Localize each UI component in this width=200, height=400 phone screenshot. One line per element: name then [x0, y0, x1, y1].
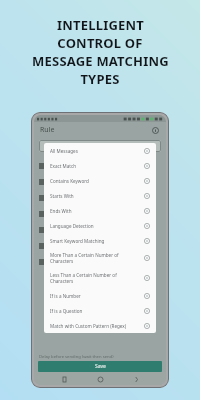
staticText: Language Detection	[50, 223, 144, 229]
staticText: Contains Keyword	[50, 178, 144, 184]
staticText: Starts With	[50, 193, 144, 199]
button[interactable]: Starts With	[44, 188, 156, 203]
staticText: Match with Custom Pattern (Regex)	[50, 323, 144, 329]
staticText: All Messages	[50, 148, 144, 154]
button[interactable]: If is a Number	[44, 288, 156, 303]
staticText: Rule	[40, 125, 55, 135]
button[interactable]: More Than a Certain Number of Characters	[44, 248, 156, 268]
button[interactable]: All Messages	[44, 143, 156, 158]
button[interactable]: Language Detection	[44, 218, 156, 233]
staticText: CONTROL OF	[57, 34, 143, 52]
button[interactable]: Contains Keyword	[44, 173, 156, 188]
staticText: TYPES	[80, 70, 120, 88]
staticText: Smart Keyword Matching	[50, 238, 144, 244]
button[interactable]: Recents	[58, 373, 70, 385]
staticText: Save	[95, 363, 106, 370]
staticText: MESSAGE MATCHING	[32, 52, 169, 70]
button[interactable]: If is a Question	[44, 303, 156, 318]
button[interactable]: Smart Keyword Matching	[44, 233, 156, 248]
button[interactable]: Ends With	[44, 203, 156, 218]
button[interactable]: Home	[94, 373, 106, 385]
staticText: If is a Question	[50, 308, 144, 314]
button[interactable]: Less Than a Certain Number of Characters	[44, 268, 156, 288]
staticText: Less Than a Certain Number of Characters	[50, 272, 144, 284]
staticText: Delay before sending (wait then send)	[39, 354, 114, 360]
staticText: Ends With	[50, 208, 144, 214]
staticText: Exact Match	[50, 163, 144, 169]
button[interactable]: Save	[38, 361, 162, 372]
button[interactable]: Match with Custom Pattern (Regex)	[44, 318, 156, 333]
button[interactable]: Back	[130, 373, 142, 385]
button[interactable]: Exact Match	[44, 158, 156, 173]
staticText: If is a Number	[50, 293, 144, 299]
staticText: More Than a Certain Number of Characters	[50, 252, 144, 264]
button[interactable]: Info	[150, 125, 160, 135]
staticText: INTELLIGENT	[57, 16, 144, 34]
